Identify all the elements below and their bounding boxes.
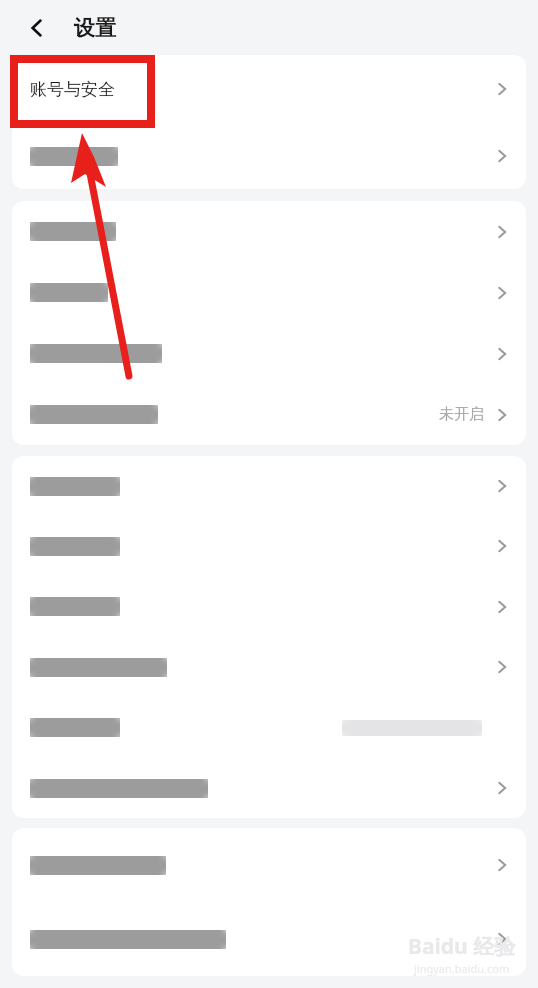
staticText: 设置 (74, 15, 116, 41)
button[interactable] (12, 828, 526, 902)
button[interactable] (12, 323, 526, 384)
staticText: 未开启 (439, 405, 484, 424)
button[interactable] (12, 201, 526, 262)
button[interactable] (12, 262, 526, 323)
button[interactable] (12, 902, 526, 976)
button[interactable] (12, 697, 526, 758)
button[interactable]: Back (20, 11, 54, 45)
button[interactable] (12, 456, 526, 516)
staticText: 账号与安全 (30, 79, 115, 100)
button[interactable] (12, 758, 526, 818)
staticText: jingyan.baidu.com (414, 961, 510, 976)
button[interactable] (12, 576, 526, 637)
button[interactable] (12, 637, 526, 697)
button[interactable]: 未开启 (12, 384, 526, 445)
button[interactable]: 账号与安全 (12, 55, 526, 123)
staticText: Baidu 经验 (408, 932, 516, 961)
button[interactable] (12, 123, 526, 189)
button[interactable] (12, 516, 526, 576)
